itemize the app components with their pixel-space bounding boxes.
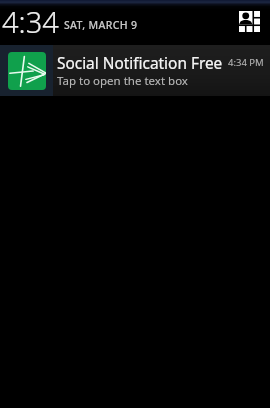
staticText: Tap to open the text box <box>57 73 188 89</box>
button[interactable]: Social Notification Free <box>0 45 270 96</box>
staticText: Social Notification Free <box>57 53 223 74</box>
button[interactable]: Quick settings <box>234 6 264 36</box>
staticText: 4:34 PM <box>228 56 264 69</box>
staticText: 4:34 <box>2 2 59 41</box>
staticText: SAT, MARCH 9 <box>64 18 138 32</box>
